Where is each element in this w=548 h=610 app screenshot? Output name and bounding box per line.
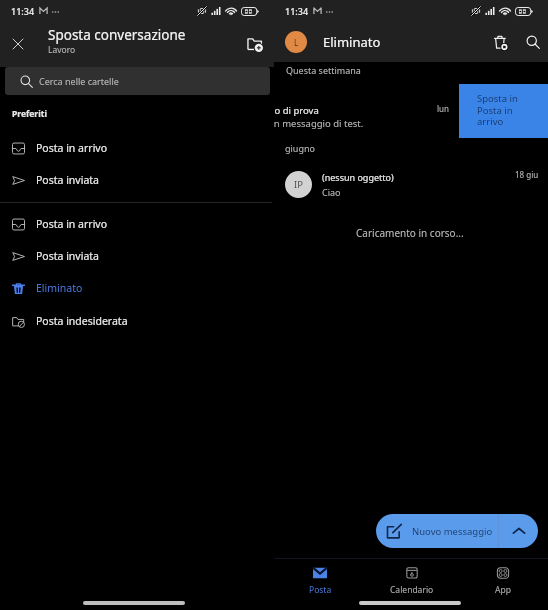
staticText: Posta [309,584,332,596]
staticText: Sposta in Posta in arrivo [477,92,518,127]
staticText: Posta inviata [36,249,99,263]
button[interactable]: Cerca nelle cartelle [5,67,270,95]
button[interactable]: Sposta in Posta in arrivo [459,84,548,138]
staticText: Caricamento in corso... [356,226,464,240]
staticText: Sposta conversazione [48,26,186,44]
staticText: Posta in arrivo [36,141,108,155]
staticText: IP [294,178,303,191]
staticText: Calendario [390,584,434,596]
staticText: App [495,584,511,596]
button[interactable]: Cerca [518,27,548,57]
staticText: Cerca nelle cartelle [39,75,119,87]
button[interactable]: Nuova cartella [241,30,269,58]
staticText: lun [437,103,449,114]
staticText: 11:34 [11,5,35,17]
button[interactable]: Posta in arrivo [0,135,274,161]
button[interactable]: Posta inviata [0,243,274,269]
staticText: giugno [285,142,315,154]
button[interactable]: Posta inviata [0,167,274,193]
button[interactable]: App [457,562,548,598]
staticText: un messaggio di test. [274,117,364,130]
staticText: io di prova [274,104,319,117]
button[interactable]: Posta indesiderata [0,308,274,334]
staticText: Ciao [322,186,341,198]
button[interactable]: io di prova [274,100,548,138]
staticText: Eliminato [36,281,83,295]
staticText: (nessun oggetto) [322,171,394,183]
staticText: Posta inviata [36,173,99,187]
button[interactable]: Nuovo messaggio [376,514,538,548]
button[interactable]: Chiudi [4,30,32,58]
button[interactable]: Svuota cartella [485,27,515,57]
staticText: Preferiti [12,108,47,120]
staticText: Posta indesiderata [36,314,128,328]
button[interactable]: Posta [274,562,366,598]
button[interactable]: Account [285,31,307,53]
staticText: L [294,37,299,48]
staticText: 18 giu [515,169,539,180]
staticText: Lavoro [48,44,76,56]
staticText: Posta in arrivo [36,217,108,231]
button[interactable]: Eliminato [0,275,274,301]
staticText: Questa settimana [286,64,361,76]
staticText: 11:34 [285,5,309,17]
button[interactable]: Espandi [499,514,538,548]
button[interactable]: Posta in arrivo [0,211,274,237]
button[interactable]: Calendario [366,562,457,598]
staticText: Nuovo messaggio [412,525,493,538]
button[interactable]: IP [274,166,548,202]
staticText: Eliminato [323,33,381,51]
